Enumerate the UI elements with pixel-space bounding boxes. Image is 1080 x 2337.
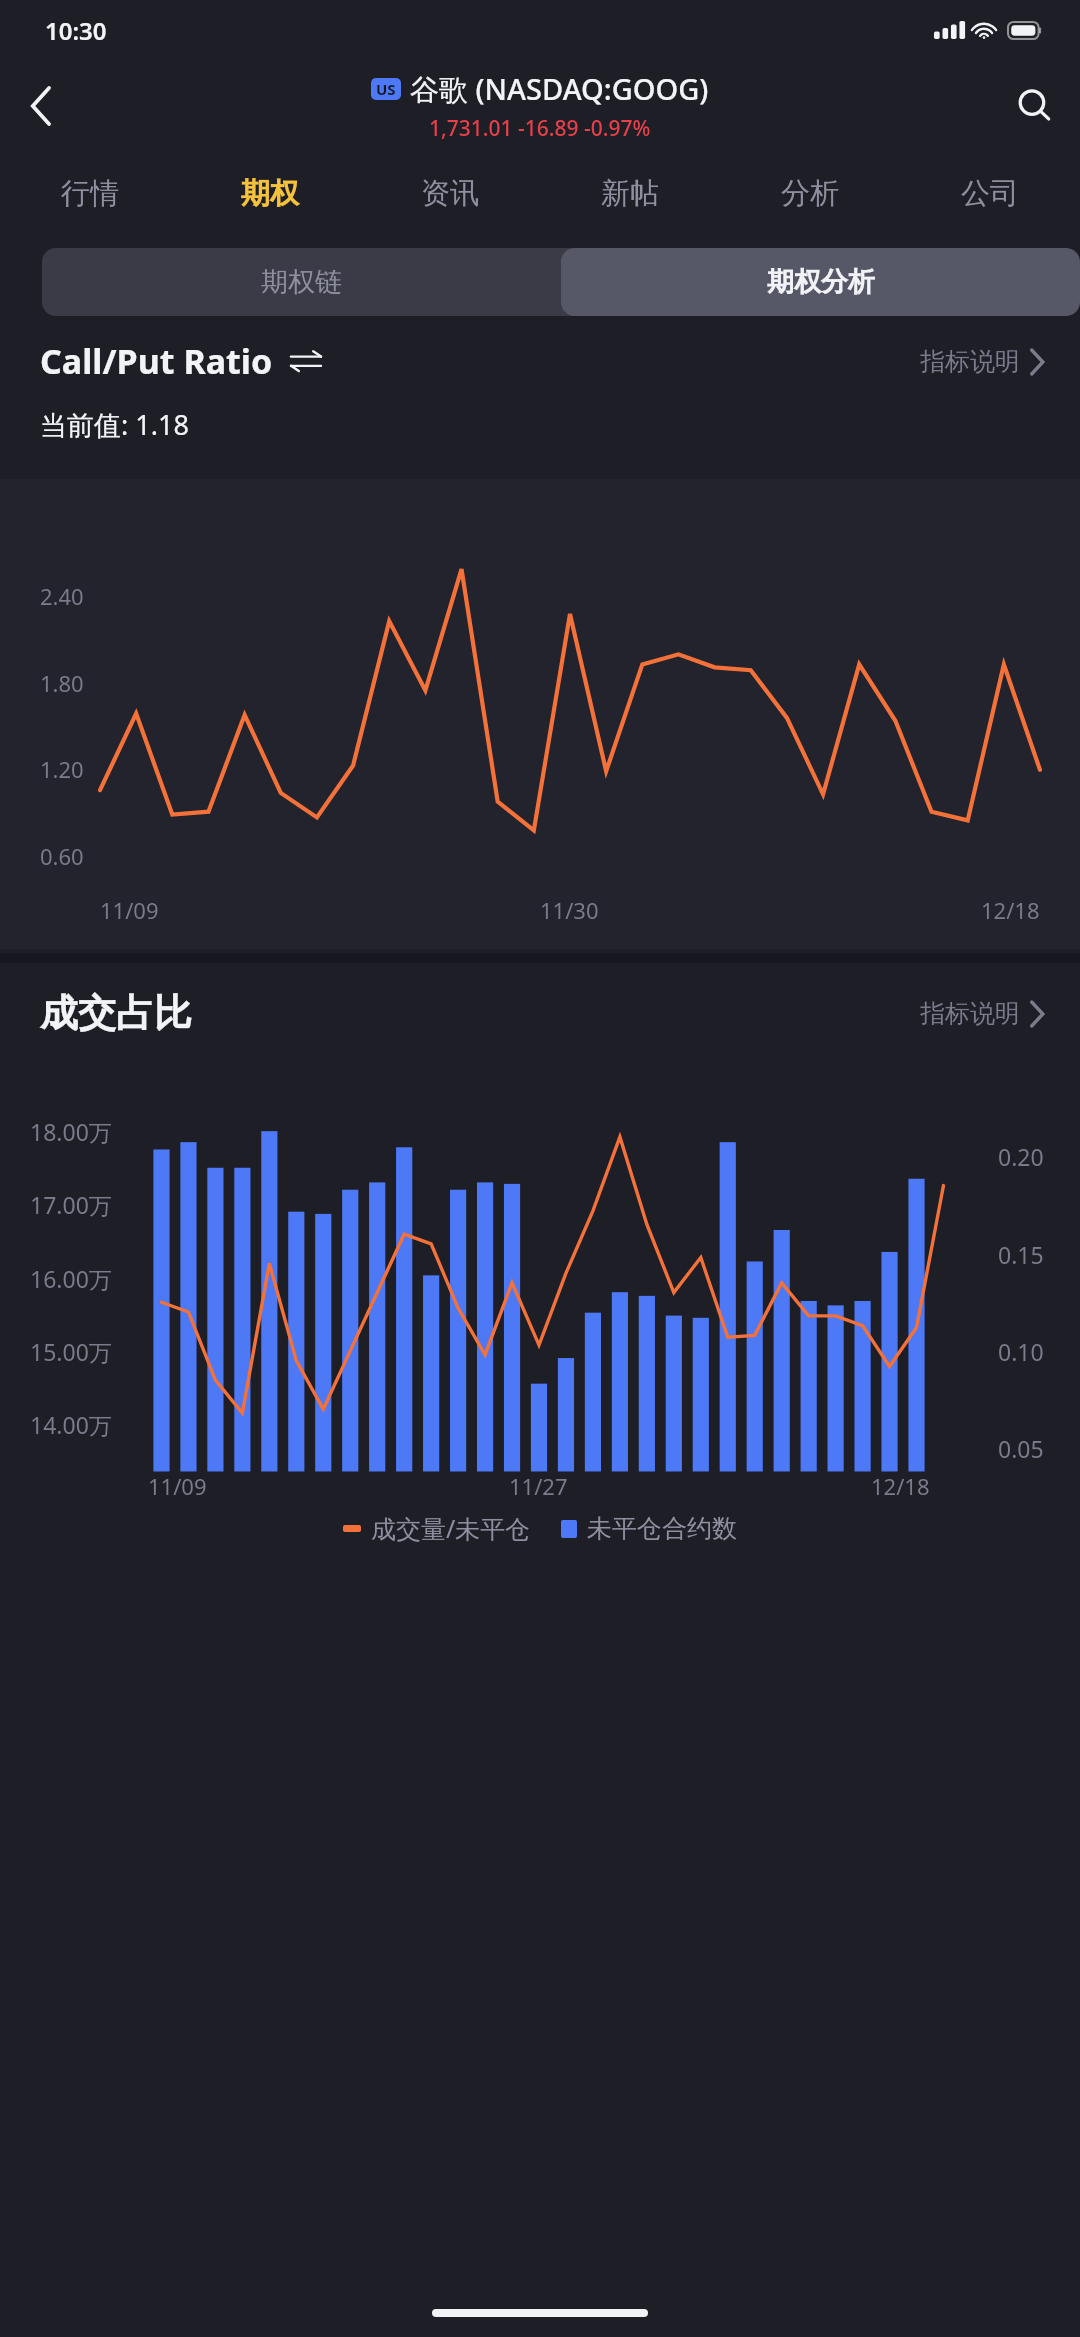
staticText: 16.00万 [30,1263,112,1294]
staticText: 0.10 [998,1336,1044,1367]
staticText: 资讯 [421,175,479,212]
staticText: 期权分析 [767,265,875,299]
staticText: 谷歌 (NASDAQ:GOOG) [410,69,709,109]
staticText: 成交量/未平仓 [371,1511,531,1545]
staticText: 1.20 [40,754,84,784]
staticText: 10:30 [45,14,107,47]
staticText: 11/27 [509,1471,568,1501]
staticText: 12/18 [871,1471,930,1501]
button[interactable]: 指标说明 [920,998,1044,1029]
button[interactable]: 分析 [720,152,900,234]
staticText: 15.00万 [30,1336,112,1367]
button[interactable]: 期权链 [42,248,561,316]
staticText: 期权 [241,175,299,212]
staticText: 12/18 [981,895,1040,925]
staticText: 0.05 [998,1433,1044,1464]
button[interactable]: 成交量/未平仓 [343,1511,531,1545]
staticText: 指标说明 [920,346,1020,377]
staticText: 新帖 [601,175,659,212]
staticText: 11/09 [148,1471,207,1501]
staticText: 11/30 [540,895,599,925]
staticText: 2.40 [40,581,84,611]
button[interactable]: 资讯 [360,152,540,234]
button[interactable]: 新帖 [540,152,720,234]
button[interactable]: Back [0,64,84,148]
staticText: 1,731.01 -16.89 -0.97% [429,114,651,143]
button[interactable]: 公司 [900,152,1080,234]
staticText: 指标说明 [920,998,1020,1029]
button[interactable]: 指标说明 [920,346,1044,377]
button[interactable]: Switch indicator [289,344,323,378]
staticText: 0.20 [998,1141,1044,1172]
staticText: 1.80 [40,668,84,698]
staticText: Call/Put Ratio [40,338,273,384]
staticText: 成交占比 [40,989,192,1037]
staticText: 期权链 [261,265,342,299]
button[interactable]: 行情 [0,152,180,234]
staticText: 14.00万 [30,1409,112,1440]
staticText: 0.60 [40,841,84,871]
staticText: 18.00万 [30,1116,112,1147]
staticText: 行情 [61,175,119,212]
staticText: US [376,79,396,99]
staticText: 0.15 [998,1239,1044,1270]
staticText: 17.00万 [30,1189,112,1220]
button[interactable]: Search [990,61,1080,151]
staticText: 当前值: 1.18 [40,406,189,443]
staticText: 公司 [961,175,1019,212]
staticText: 11/09 [100,895,159,925]
button[interactable]: 未平仓合约数 [561,1513,737,1544]
staticText: 分析 [781,175,839,212]
button[interactable]: 期权 [180,152,360,234]
button[interactable]: 期权分析 [561,248,1080,316]
staticText: 未平仓合约数 [587,1513,737,1544]
